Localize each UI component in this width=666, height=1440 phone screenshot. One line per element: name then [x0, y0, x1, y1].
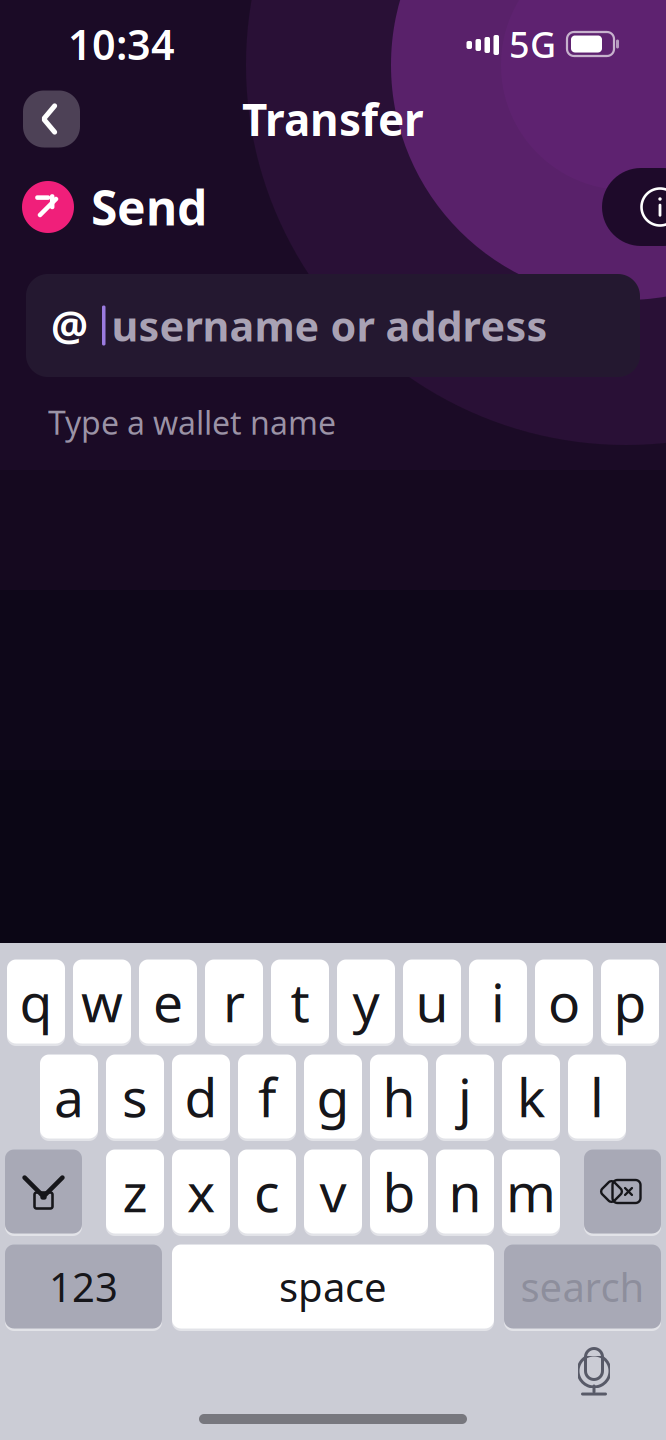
- button[interactable]: Dictate: [554, 1337, 634, 1407]
- button[interactable]: v: [304, 1148, 362, 1235]
- button[interactable]: e: [139, 958, 197, 1045]
- button[interactable]: i: [469, 958, 527, 1045]
- staticText: i: [491, 966, 505, 1037]
- button[interactable]: w: [73, 958, 131, 1045]
- button[interactable]: y: [337, 958, 395, 1045]
- staticText: a: [54, 1061, 84, 1132]
- staticText: n: [448, 1156, 481, 1227]
- staticText: w: [81, 966, 123, 1037]
- button[interactable]: s: [106, 1053, 164, 1140]
- staticText: u: [415, 966, 448, 1037]
- staticText: l: [590, 1061, 604, 1132]
- staticText: p: [613, 966, 646, 1037]
- staticText: 123: [49, 1260, 118, 1313]
- button[interactable]: m: [502, 1148, 560, 1235]
- staticText: 5G: [509, 20, 556, 68]
- staticText: q: [19, 966, 52, 1037]
- staticText: x: [187, 1156, 215, 1227]
- button[interactable]: u: [403, 958, 461, 1045]
- button[interactable]: g: [304, 1053, 362, 1140]
- staticText: h: [382, 1061, 415, 1132]
- button[interactable]: r: [205, 958, 263, 1045]
- staticText: v: [319, 1156, 346, 1227]
- staticText: d: [184, 1061, 217, 1132]
- staticText: z: [122, 1156, 147, 1227]
- button[interactable]: Information: [602, 168, 666, 246]
- staticText: y: [352, 966, 379, 1037]
- button[interactable]: n: [436, 1148, 494, 1235]
- button[interactable]: c: [238, 1148, 296, 1235]
- button[interactable]: z: [106, 1148, 164, 1235]
- button[interactable]: p: [601, 958, 659, 1045]
- staticText: e: [153, 966, 183, 1037]
- button[interactable]: k: [502, 1053, 560, 1140]
- button[interactable]: o: [535, 958, 593, 1045]
- staticText: g: [316, 1061, 349, 1132]
- button[interactable]: d: [172, 1053, 230, 1140]
- button[interactable]: f: [238, 1053, 296, 1140]
- staticText: j: [458, 1061, 472, 1132]
- button[interactable]: Delete: [584, 1148, 661, 1235]
- button[interactable]: search: [504, 1243, 661, 1330]
- button[interactable]: a: [40, 1053, 98, 1140]
- staticText: c: [254, 1156, 280, 1227]
- button[interactable]: space: [172, 1243, 494, 1330]
- staticText: s: [122, 1061, 148, 1132]
- button[interactable]: t: [271, 958, 329, 1045]
- staticText: @: [51, 298, 88, 353]
- staticText: r: [223, 966, 245, 1037]
- staticText: Type a wallet name: [48, 401, 336, 443]
- staticText: m: [506, 1156, 556, 1227]
- button[interactable]: h: [370, 1053, 428, 1140]
- button[interactable]: b: [370, 1148, 428, 1235]
- staticText: f: [258, 1061, 276, 1132]
- button[interactable]: q: [7, 958, 65, 1045]
- staticText: search: [520, 1260, 644, 1313]
- staticText: b: [382, 1156, 415, 1227]
- staticText: Send: [91, 175, 207, 239]
- staticText: Transfer: [242, 90, 424, 148]
- button[interactable]: l: [568, 1053, 626, 1140]
- button[interactable]: Back: [23, 90, 80, 147]
- staticText: o: [548, 966, 580, 1037]
- staticText: t: [290, 966, 309, 1037]
- button[interactable]: x: [172, 1148, 230, 1235]
- button[interactable]: 123: [5, 1243, 162, 1330]
- button[interactable]: Shift: [5, 1148, 82, 1235]
- staticText: 10:34: [68, 17, 175, 71]
- staticText: space: [279, 1260, 387, 1313]
- button[interactable]: j: [436, 1053, 494, 1140]
- staticText: k: [517, 1061, 545, 1132]
- staticText: username or address: [111, 298, 547, 353]
